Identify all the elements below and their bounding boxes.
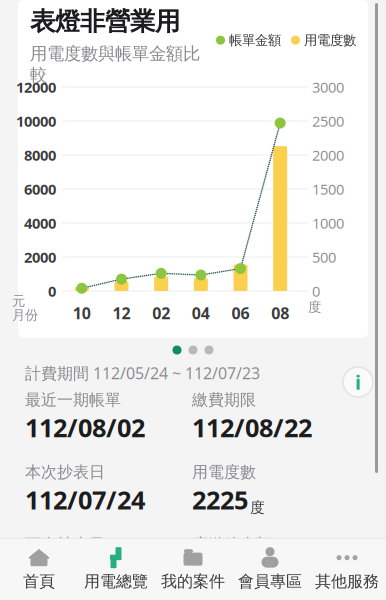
staticText: 用電度數 bbox=[192, 462, 256, 482]
staticText: 最近一期帳單 bbox=[25, 390, 121, 410]
staticText: i bbox=[355, 369, 361, 395]
staticText: 112/08/02 bbox=[25, 411, 145, 444]
staticText: 10 bbox=[73, 302, 91, 324]
staticText: 2000 bbox=[24, 247, 56, 267]
staticText: 112/08/22 bbox=[192, 411, 312, 444]
staticText: 112/07/24 bbox=[25, 483, 145, 516]
staticText: 表燈非營業用 bbox=[30, 6, 180, 37]
staticText: 會員專區 bbox=[238, 572, 302, 591]
staticText: 用電度數與帳單金額比較 bbox=[30, 43, 200, 86]
staticText: 02 bbox=[152, 302, 170, 324]
staticText: 08 bbox=[271, 302, 289, 324]
staticText: 度 bbox=[308, 299, 321, 315]
staticText: 2225 bbox=[192, 483, 248, 516]
staticText: 用電總覽 bbox=[84, 572, 148, 591]
staticText: 2000 bbox=[312, 145, 344, 165]
staticText: 12000 bbox=[16, 77, 56, 97]
staticText: 0 bbox=[48, 281, 56, 301]
staticText: 下次抄表日 bbox=[25, 535, 105, 554]
staticText: 4000 bbox=[24, 213, 56, 233]
button[interactable]: 其他服務 bbox=[308, 542, 385, 596]
staticText: 元 bbox=[12, 293, 25, 309]
button[interactable]: 我的案件 bbox=[154, 542, 231, 596]
staticText: 06 bbox=[231, 302, 249, 324]
staticText: 6000 bbox=[24, 179, 56, 199]
staticText: 帳單金額 bbox=[229, 32, 281, 48]
button[interactable]: 說明 bbox=[338, 362, 378, 402]
staticText: 1500 bbox=[312, 179, 344, 199]
staticText: 我的案件 bbox=[161, 572, 225, 591]
staticText: 繳費期限 bbox=[192, 390, 256, 410]
staticText: 2500 bbox=[312, 111, 344, 131]
button[interactable]: 用電總覽 bbox=[77, 542, 154, 596]
staticText: 用電度數 bbox=[304, 32, 356, 48]
staticText: 其他服務 bbox=[315, 572, 379, 591]
staticText: 3000 bbox=[312, 77, 344, 97]
staticText: 首頁 bbox=[23, 572, 55, 591]
staticText: 1000 bbox=[312, 213, 344, 233]
staticText: 月份 bbox=[12, 307, 38, 323]
staticText: 8000 bbox=[24, 145, 56, 165]
staticText: 0 bbox=[312, 281, 320, 301]
staticText: 度 bbox=[250, 499, 265, 517]
button[interactable]: 首頁 bbox=[0, 542, 77, 596]
button[interactable]: 會員專區 bbox=[231, 542, 308, 596]
staticText: 10000 bbox=[16, 111, 56, 131]
staticText: 04 bbox=[192, 302, 210, 324]
staticText: 應繳總金額 bbox=[192, 535, 272, 554]
staticText: 計費期間 112/05/24 ~ 112/07/23 bbox=[25, 362, 260, 384]
staticText: 12 bbox=[112, 302, 130, 324]
staticText: 500 bbox=[312, 247, 336, 267]
staticText: 本次抄表日 bbox=[25, 462, 105, 482]
